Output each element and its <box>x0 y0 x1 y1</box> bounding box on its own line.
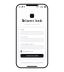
staticText: Confirm password <box>20 43 34 45</box>
staticText: Email <box>20 29 23 31</box>
staticText: lıl ᯅ ▮ <box>36 5 45 8</box>
staticText: Remember me <box>23 51 33 52</box>
staticText: 9:41 <box>19 5 26 8</box>
staticText: Password <box>20 36 28 38</box>
staticText: Create account <box>25 55 38 57</box>
staticText: Sign in to your account <box>24 23 39 25</box>
button[interactable]: Create account <box>20 54 43 57</box>
staticText: Welcome back <box>21 19 42 23</box>
staticText: Already have an account? Sign in <box>20 62 43 64</box>
